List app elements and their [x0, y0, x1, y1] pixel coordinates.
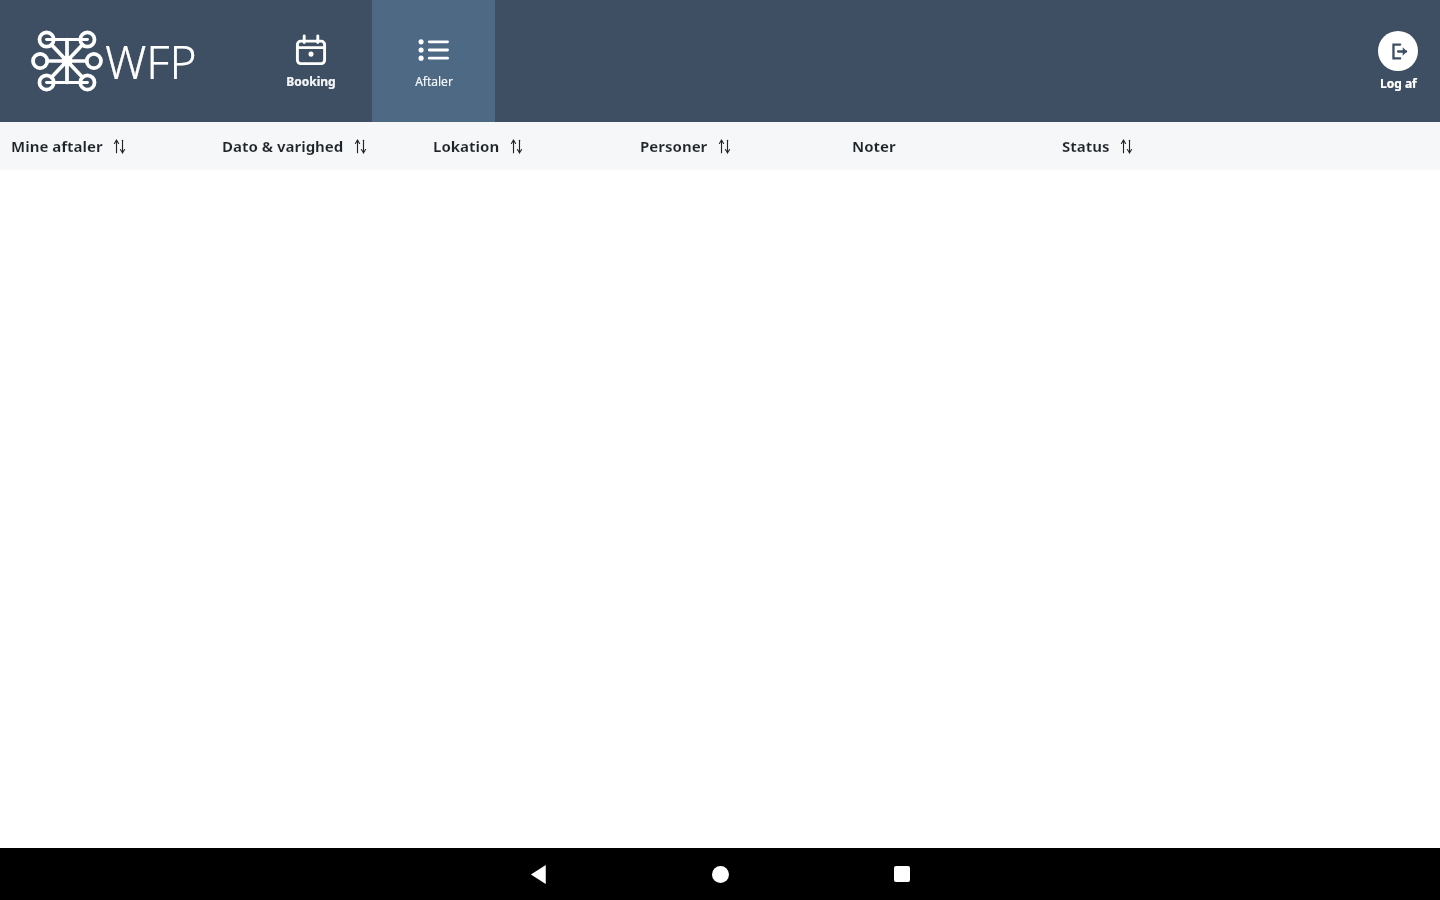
staticText: Log af: [1380, 75, 1417, 91]
staticText: Booking: [286, 73, 336, 89]
staticText: Aftaler: [415, 73, 453, 89]
button[interactable]: Status: [1027, 122, 1232, 170]
staticText: Mine aftaler: [11, 136, 103, 156]
button[interactable]: Noter: [822, 122, 1027, 170]
button[interactable]: Log af: [1378, 31, 1418, 91]
other: WFP logo: [33, 27, 101, 95]
staticText: Noter: [852, 136, 896, 156]
staticText: Dato & varighed: [222, 136, 344, 156]
button[interactable]: Personer: [617, 122, 822, 170]
button[interactable]: Booking: [249, 0, 372, 122]
button[interactable]: Back: [448, 848, 628, 900]
staticText: Personer: [640, 136, 708, 156]
button[interactable]: Dato & varighed: [207, 122, 412, 170]
button[interactable]: Mine aftaler: [0, 122, 207, 170]
button[interactable]: Recent apps: [812, 848, 992, 900]
button[interactable]: Aftaler: [372, 0, 495, 122]
button[interactable]: Lokation: [412, 122, 617, 170]
staticText: Lokation: [433, 136, 500, 156]
staticText: WFP: [105, 30, 197, 93]
staticText: Status: [1062, 136, 1110, 156]
button[interactable]: Home: [630, 848, 810, 900]
